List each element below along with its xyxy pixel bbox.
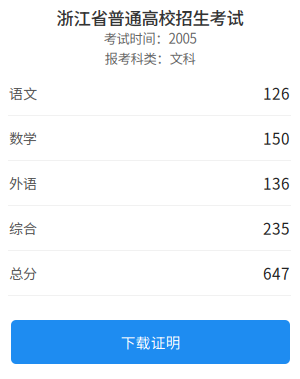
staticText: 综合 [9,218,37,238]
button[interactable]: 语文 [0,71,300,116]
staticText: 150 [263,127,290,149]
staticText: 考试时间：2005 [103,28,196,48]
staticText: 数学 [9,128,37,148]
staticText: 报考科类：文科 [104,48,195,68]
staticText: 外语 [9,173,37,193]
button[interactable]: 综合 [0,206,300,251]
staticText: 136 [263,172,290,194]
staticText: 总分 [9,263,37,283]
staticText: 126 [263,82,290,104]
button[interactable]: 数学 [0,116,300,161]
button[interactable]: 下载证明 [11,320,290,364]
button[interactable]: 总分 [0,251,300,296]
staticText: 下载证明 [120,331,180,353]
staticText: 语文 [9,83,37,103]
staticText: 647 [263,262,290,284]
staticText: 235 [263,217,290,239]
button[interactable]: 外语 [0,161,300,206]
staticText: 浙江省普通高校招生考试 [56,5,243,30]
